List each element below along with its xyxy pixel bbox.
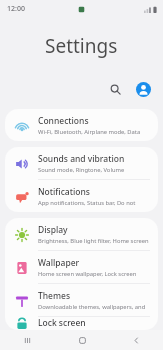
- staticText: Downloadable themes, wallpapers, and ico…: [38, 303, 150, 311]
- staticText: Connections: [38, 115, 89, 127]
- button[interactable]: Search: [104, 78, 126, 100]
- button[interactable]: Sounds and vibration: [5, 147, 158, 179]
- button[interactable]: Themes: [5, 284, 158, 316]
- staticText: Wi-Fi, Bluetooth, Airplane mode, Data us…: [38, 128, 150, 136]
- button[interactable]: Back: [109, 330, 163, 350]
- staticText: 12:00: [7, 4, 25, 14]
- staticText: Settings: [45, 33, 118, 59]
- button[interactable]: Wallpaper: [5, 251, 158, 283]
- staticText: Wallpaper: [38, 257, 80, 269]
- staticText: Lock screen: [38, 317, 86, 329]
- button[interactable]: Connections: [5, 109, 158, 141]
- staticText: Brightness, Blue light filter, Home scre…: [38, 237, 149, 245]
- button[interactable]: Notifications: [5, 180, 158, 212]
- staticText: Sounds and vibration: [38, 153, 125, 165]
- button[interactable]: Lock screen: [5, 317, 158, 330]
- staticText: Display: [38, 224, 68, 236]
- button[interactable]: Display: [5, 218, 158, 250]
- staticText: App notifications, Status bar, Do not di…: [38, 199, 150, 207]
- button[interactable]: Account: [132, 78, 154, 100]
- staticText: Sound mode, Ringtone, Volume: [38, 166, 125, 174]
- button[interactable]: Home: [55, 330, 109, 350]
- button[interactable]: Recents: [0, 330, 55, 350]
- staticText: Notifications: [38, 186, 90, 198]
- staticText: Themes: [38, 290, 71, 302]
- staticText: Home screen wallpaper, Lock screen wallp…: [38, 270, 150, 278]
